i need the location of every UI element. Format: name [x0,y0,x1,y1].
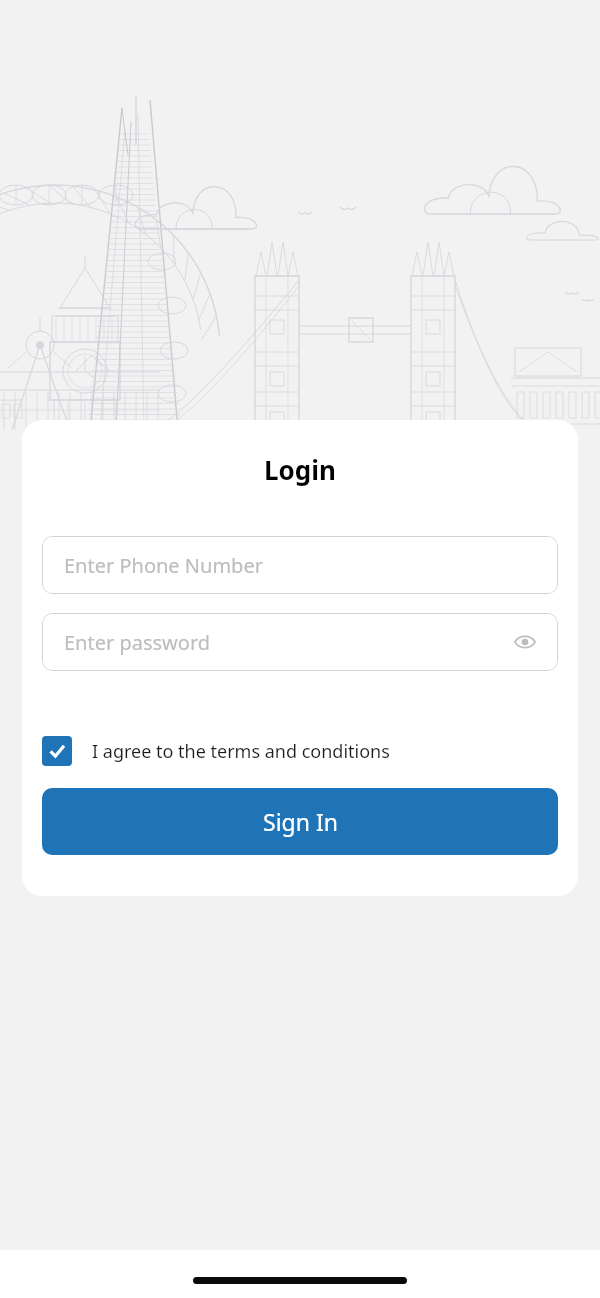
staticText: Sign In [263,806,338,837]
button[interactable]: Enter Phone Number [42,536,558,594]
button[interactable]: I agree to the terms and conditions [42,736,390,766]
staticText: I agree to the terms and conditions [92,739,390,764]
staticText: Login [264,452,336,487]
staticText: Enter password [64,629,211,656]
button[interactable]: Enter password [42,613,558,671]
button[interactable]: Sign In [42,788,558,855]
button[interactable]: Show password [510,627,540,657]
staticText: Enter Phone Number [64,552,263,579]
